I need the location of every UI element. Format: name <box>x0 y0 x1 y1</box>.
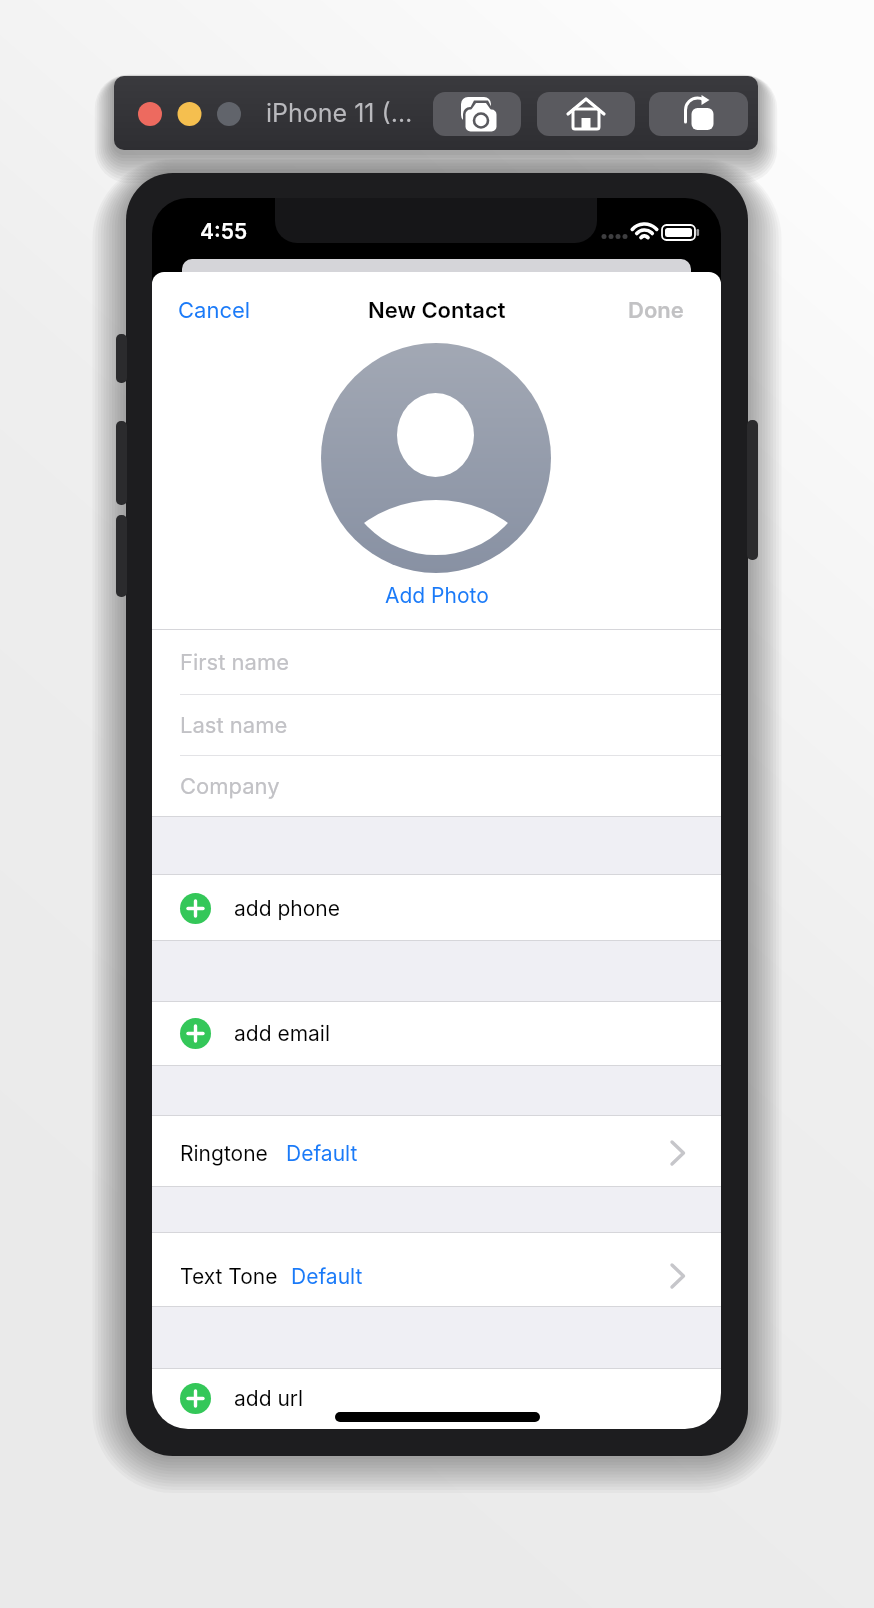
button[interactable] <box>152 1001 721 1065</box>
staticText: Cancel <box>178 297 251 324</box>
button[interactable]: Done <box>584 294 684 326</box>
staticText: 4:55 <box>200 219 248 244</box>
button[interactable] <box>649 92 748 136</box>
button[interactable] <box>152 1232 721 1306</box>
button[interactable]: Cancel <box>178 294 288 326</box>
staticText: Last name <box>180 712 288 739</box>
button[interactable] <box>152 1115 721 1186</box>
staticText: add url <box>234 1386 304 1411</box>
button[interactable]: First name <box>180 630 680 694</box>
staticText: First name <box>180 649 290 676</box>
button[interactable] <box>537 92 635 136</box>
button[interactable]: Company <box>180 756 680 816</box>
button[interactable]: Last name <box>180 695 680 755</box>
button[interactable] <box>152 1368 721 1429</box>
staticText: Ringtone <box>180 1141 268 1166</box>
staticText: New Contact <box>368 297 506 324</box>
staticText: Company <box>180 773 280 800</box>
staticText: add email <box>234 1021 331 1046</box>
staticText: Text Tone <box>180 1264 278 1289</box>
staticText: iPhone 11 (… <box>266 98 413 128</box>
button[interactable]: Add Photo <box>152 582 721 608</box>
button[interactable] <box>433 92 521 136</box>
staticText: Default <box>291 1264 363 1289</box>
staticText: add phone <box>234 896 340 921</box>
staticText: Default <box>286 1141 358 1166</box>
staticText: Done <box>628 297 684 324</box>
button[interactable] <box>152 874 721 940</box>
staticText: Add Photo <box>385 583 489 608</box>
